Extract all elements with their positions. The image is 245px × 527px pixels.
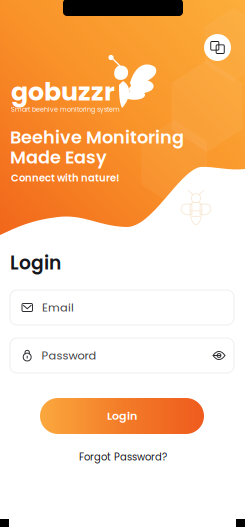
- staticText: Login: [10, 250, 61, 276]
- staticText: Smart beehive monitoring system: [11, 105, 120, 114]
- button[interactable]: Password: [10, 338, 234, 373]
- button[interactable]: Change language: [202, 32, 233, 63]
- staticText: gobuzzr: [11, 74, 115, 109]
- staticText: Connect with nature!: [11, 171, 120, 185]
- staticText: Beehive Monitoring: [10, 125, 184, 150]
- staticText: Made Easy: [10, 145, 107, 170]
- button[interactable]: Forgot Password?: [63, 449, 183, 465]
- staticText: Forgot Password?: [79, 450, 167, 464]
- staticText: Email: [42, 300, 74, 315]
- button[interactable]: Login: [40, 398, 204, 434]
- staticText: Password: [41, 348, 96, 363]
- button[interactable]: Email: [10, 290, 234, 325]
- staticText: Login: [107, 408, 137, 424]
